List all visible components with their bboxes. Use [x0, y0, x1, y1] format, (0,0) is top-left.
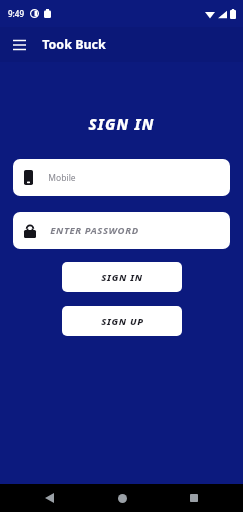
staticText: ENTER PASSWORD [50, 224, 139, 237]
staticText: Took Buck [42, 36, 106, 53]
button[interactable]: Open navigation menu [7, 33, 31, 57]
staticText: SIGN IN [88, 114, 155, 134]
staticText: SIGN UP [101, 315, 144, 328]
button[interactable]: Mobile [13, 159, 230, 196]
staticText: 9:49 [8, 8, 24, 19]
button[interactable]: Home [99, 484, 145, 512]
button[interactable]: Back [26, 484, 72, 512]
button[interactable]: ENTER PASSWORD [13, 212, 230, 249]
staticText: Mobile [48, 172, 76, 184]
button[interactable]: SIGN UP [62, 306, 182, 336]
button[interactable]: Recent apps [171, 484, 217, 512]
staticText: SIGN IN [101, 271, 143, 284]
button[interactable]: SIGN IN [62, 262, 182, 292]
